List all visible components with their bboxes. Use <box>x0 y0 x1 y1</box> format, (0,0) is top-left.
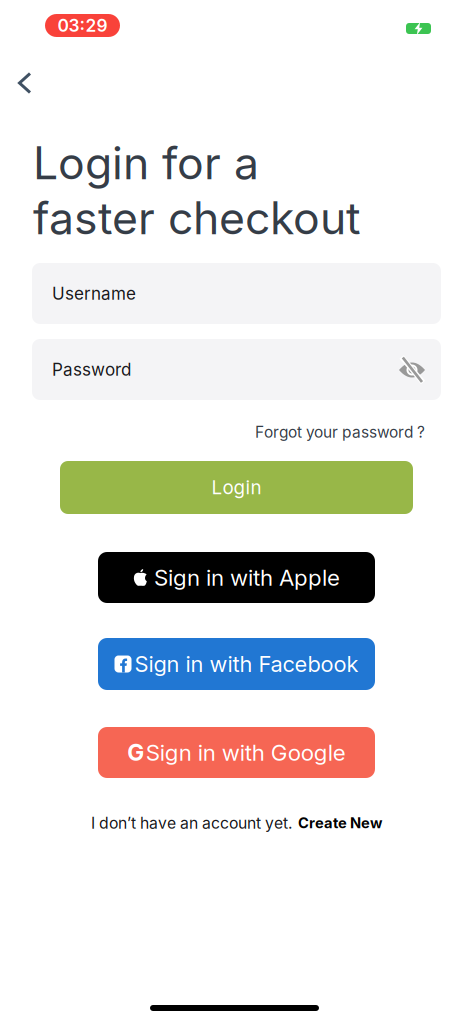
staticText: Sign in with Apple <box>154 564 340 591</box>
staticText: Create New <box>298 814 382 832</box>
staticText: I don’t have an account yet. <box>91 813 293 832</box>
button[interactable]: Create New <box>298 814 382 832</box>
button[interactable]: Show password <box>392 350 432 390</box>
button[interactable]: Forgot your password ? <box>255 423 425 441</box>
button[interactable]: Sign in with Apple <box>98 552 375 603</box>
staticText: Sign in with Facebook <box>134 651 358 677</box>
button[interactable]: G <box>98 727 375 778</box>
button[interactable]: Password <box>32 339 441 400</box>
staticText: Forgot your password ? <box>255 423 425 441</box>
button[interactable]: Username <box>32 263 441 324</box>
staticText: Username <box>52 283 136 304</box>
staticText: Login for a <box>33 136 259 190</box>
staticText: 03:29 <box>57 15 107 36</box>
button[interactable]: Login <box>60 461 413 514</box>
staticText: Password <box>52 359 131 380</box>
staticText: Login <box>211 476 261 499</box>
button[interactable]: Sign in with Facebook <box>98 638 375 690</box>
staticText: faster checkout <box>33 191 361 245</box>
button[interactable]: Back <box>8 66 42 100</box>
staticText: G <box>127 739 144 766</box>
staticText: Sign in with Google <box>146 739 346 766</box>
